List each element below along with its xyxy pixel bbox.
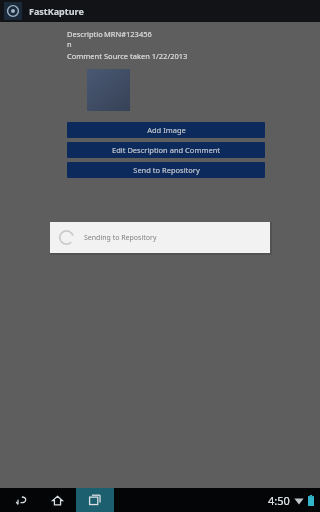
staticText: MRN#123456 <box>104 29 152 39</box>
other: App icon <box>4 2 22 20</box>
staticText: Sending to Repository <box>84 233 157 243</box>
button[interactable]: Status bar <box>268 488 320 512</box>
staticText: Add Image <box>147 125 186 135</box>
button[interactable]: Add Image <box>67 122 265 138</box>
staticText: Edit Description and Comment <box>112 145 220 155</box>
button[interactable]: Captured image thumbnail <box>87 69 130 111</box>
staticText: Comment <box>67 51 104 61</box>
button[interactable]: Edit Description and Comment <box>67 142 265 158</box>
staticText: Description <box>67 29 104 49</box>
staticText: FastKapture <box>29 5 84 17</box>
staticText: 4:50 <box>268 493 290 508</box>
button[interactable]: Send to Repository <box>67 162 265 178</box>
button[interactable]: Home <box>42 488 72 512</box>
staticText: Send to Repository <box>133 165 200 175</box>
staticText: Source taken 1/22/2013 <box>104 51 188 61</box>
button[interactable]: Recent apps <box>76 488 114 512</box>
button[interactable]: Back <box>6 488 36 512</box>
